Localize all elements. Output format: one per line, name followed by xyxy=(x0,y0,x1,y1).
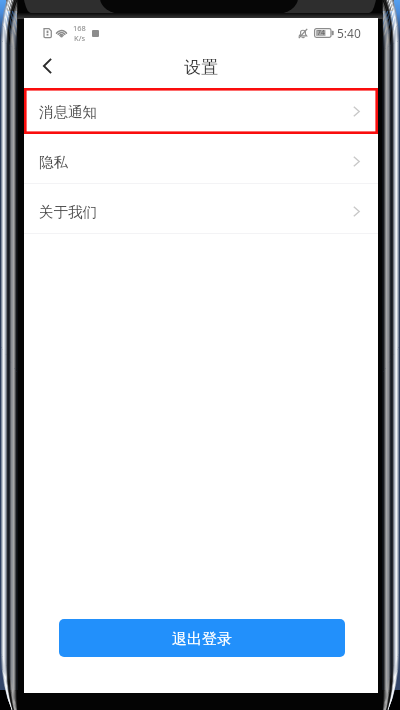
staticText: 74 xyxy=(317,28,326,38)
button[interactable]: 消息通知 xyxy=(24,84,378,134)
staticText: 168 xyxy=(73,23,86,33)
staticText: 隐私 xyxy=(39,153,68,171)
staticText: 消息通知 xyxy=(39,103,97,121)
staticText: 退出登录 xyxy=(172,630,232,649)
staticText: K/s xyxy=(74,33,86,43)
button[interactable]: Back xyxy=(24,48,70,84)
staticText: 5:40 xyxy=(337,25,361,41)
button[interactable]: 关于我们 xyxy=(24,184,378,234)
button[interactable]: 退出登录 xyxy=(59,619,345,657)
staticText: 设置 xyxy=(184,57,218,78)
button[interactable]: 隐私 xyxy=(24,134,378,184)
staticText: 关于我们 xyxy=(39,203,97,221)
